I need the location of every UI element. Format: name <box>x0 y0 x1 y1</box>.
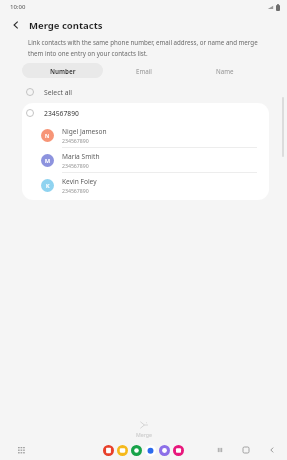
staticText: Name <box>216 67 234 75</box>
button[interactable]: App <box>159 445 170 456</box>
button[interactable]: N <box>22 123 269 148</box>
button[interactable]: App <box>131 445 142 456</box>
staticText: 10:00 <box>10 3 26 11</box>
staticText: K <box>46 182 50 189</box>
button[interactable]: Select all <box>0 84 287 100</box>
staticText: Kevin Foley <box>62 177 97 186</box>
staticText: Maria Smith <box>62 152 100 161</box>
button[interactable]: App <box>173 445 184 456</box>
staticText: Merge <box>136 431 152 438</box>
button[interactable]: Name <box>184 63 265 78</box>
button[interactable]: App <box>103 445 114 456</box>
staticText: M <box>45 157 51 164</box>
staticText: Email <box>136 67 152 75</box>
staticText: 234567890 <box>44 109 79 118</box>
staticText: N <box>45 132 50 139</box>
staticText: Select all <box>44 88 72 97</box>
button[interactable]: Back <box>267 445 277 455</box>
staticText: Number <box>50 67 76 75</box>
staticText: Nigel Jameson <box>62 127 107 136</box>
button[interactable]: Home <box>241 445 251 455</box>
button[interactable]: App <box>145 445 156 456</box>
button[interactable]: Number <box>22 63 103 78</box>
button[interactable]: Navigate up <box>8 17 24 33</box>
staticText: 234567890 <box>62 187 89 194</box>
staticText: Link contacts with the same phone number… <box>28 38 258 46</box>
button[interactable]: App <box>117 445 128 456</box>
button[interactable]: 234567890 <box>22 103 269 123</box>
button[interactable]: Apps <box>16 445 26 455</box>
button[interactable]: Recents <box>215 445 225 455</box>
button[interactable]: M <box>22 148 269 173</box>
staticText: 234567890 <box>62 162 89 169</box>
staticText: Merge contacts <box>29 19 103 32</box>
button[interactable]: Email <box>103 63 184 78</box>
button[interactable]: K <box>22 173 269 198</box>
staticText: 234567890 <box>62 137 89 144</box>
staticText: them into one entry on your contacts lis… <box>28 49 148 57</box>
